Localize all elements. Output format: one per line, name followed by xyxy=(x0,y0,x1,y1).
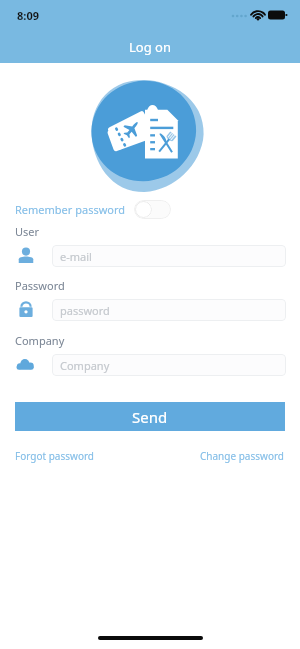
staticText: Send xyxy=(132,407,168,427)
staticText: Company xyxy=(60,358,110,373)
staticText: Remember password xyxy=(15,202,126,217)
button[interactable]: e-mail xyxy=(52,245,286,267)
staticText: Password xyxy=(15,278,65,293)
staticText: 8:09 xyxy=(17,8,39,23)
button[interactable]: Company xyxy=(52,354,286,376)
staticText: Change password xyxy=(200,449,285,463)
button[interactable]: Change password xyxy=(200,449,285,463)
button[interactable] xyxy=(134,200,171,219)
button[interactable]: Send xyxy=(15,402,285,431)
staticText: Forgot password xyxy=(15,449,95,463)
button[interactable]: password xyxy=(52,299,286,321)
staticText: password xyxy=(60,303,110,318)
staticText: Company xyxy=(15,333,65,348)
staticText: Log on xyxy=(129,38,171,56)
staticText: e-mail xyxy=(60,249,92,264)
button[interactable]: Forgot password xyxy=(15,449,95,463)
staticText: User xyxy=(15,224,40,239)
